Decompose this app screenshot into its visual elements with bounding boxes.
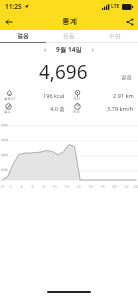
button[interactable]: 층수 xyxy=(0,102,69,115)
staticText: 칼로리 xyxy=(4,97,15,102)
button[interactable]: Next day xyxy=(88,45,98,55)
staticText: 18 xyxy=(100,184,105,189)
staticText: 걸음 xyxy=(17,32,29,40)
staticText: 수면 xyxy=(109,32,121,40)
staticText: 4,696 xyxy=(39,59,88,85)
staticText: 14 xyxy=(76,184,81,189)
staticText: 20 xyxy=(112,184,117,189)
staticText: 9월 14일 xyxy=(56,45,82,54)
staticText: 12 xyxy=(64,184,69,189)
staticText: 8 xyxy=(42,184,45,189)
staticText: 3.79 km/h xyxy=(107,105,134,113)
staticText: LTE xyxy=(111,3,120,10)
staticText: 16 xyxy=(88,184,93,189)
button[interactable]: 걸음 xyxy=(0,30,46,42)
staticText: 통계 xyxy=(62,17,77,26)
staticText: 196 kcal xyxy=(43,92,65,100)
staticText: 0 xyxy=(1,184,4,189)
staticText: 거리 xyxy=(73,97,81,102)
staticText: 6 xyxy=(31,184,34,189)
staticText: 11:25 xyxy=(5,2,22,11)
staticText: 4.0 층 xyxy=(50,105,65,113)
button[interactable]: 칼로리 xyxy=(0,89,69,102)
button[interactable]: 수면 xyxy=(92,30,138,42)
staticText: 운동 xyxy=(63,32,75,40)
button[interactable]: 운동 xyxy=(46,30,92,42)
staticText: 속도 xyxy=(73,110,81,115)
staticText: 10 xyxy=(52,184,57,189)
button[interactable]: Previous day xyxy=(40,45,50,55)
staticText: 걸음 xyxy=(121,74,132,81)
staticText: 4 xyxy=(20,184,23,189)
button[interactable]: Back xyxy=(0,13,17,30)
staticText: 층수 xyxy=(4,110,12,115)
button[interactable]: 거리 xyxy=(69,89,138,102)
staticText: 2.91 km xyxy=(113,92,134,100)
staticText: 22 xyxy=(124,184,129,189)
staticText: 2 xyxy=(9,184,12,189)
button[interactable]: 속도 xyxy=(69,102,138,115)
button[interactable]: Share xyxy=(121,13,138,30)
staticText: 24 xyxy=(133,184,138,189)
